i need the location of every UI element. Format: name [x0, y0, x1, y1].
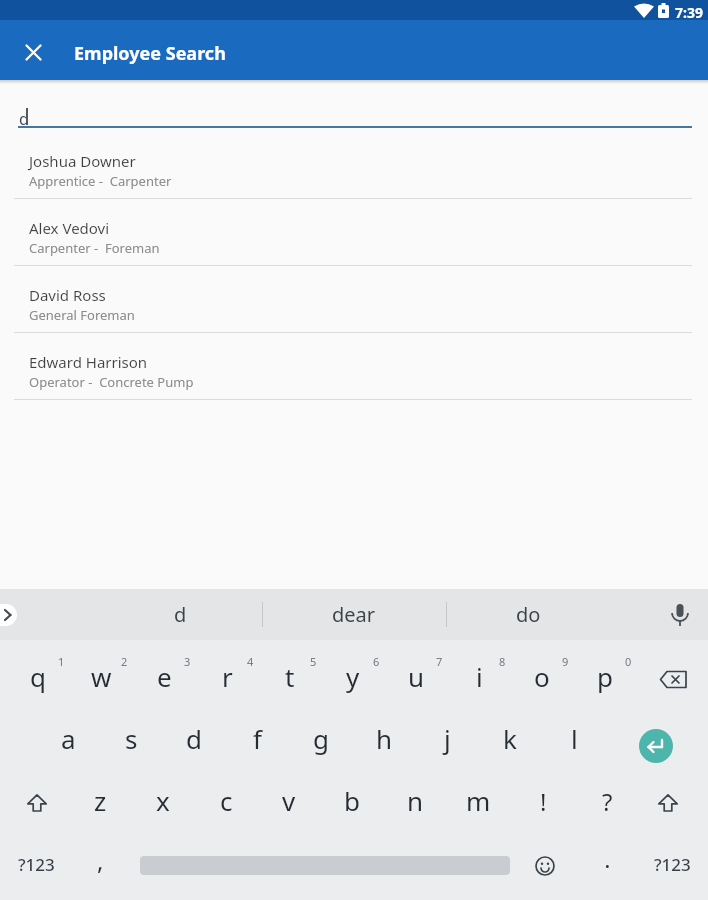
button[interactable]: s: [101, 709, 161, 767]
button[interactable]: c: [196, 771, 256, 829]
staticText: David Ross: [29, 285, 106, 305]
staticText: 6: [373, 654, 380, 669]
staticText: v: [282, 783, 296, 818]
button[interactable]: ?123: [639, 835, 705, 893]
button[interactable]: ?123: [3, 835, 69, 893]
staticText: Edward Harrison: [29, 352, 148, 372]
button[interactable]: f: [227, 709, 287, 767]
button[interactable]: n: [385, 771, 445, 829]
button[interactable]: ,: [72, 831, 128, 889]
button[interactable]: [664, 599, 696, 631]
staticText: ?: [602, 785, 613, 818]
staticText: z: [94, 783, 107, 818]
staticText: 5: [310, 654, 317, 669]
staticText: d: [19, 108, 29, 130]
staticText: q: [30, 659, 46, 694]
staticText: 2: [121, 654, 128, 669]
staticText: ?123: [18, 853, 55, 876]
button[interactable]: [639, 729, 673, 763]
button[interactable]: j: [417, 709, 477, 767]
staticText: do: [516, 601, 541, 628]
staticText: e: [157, 659, 172, 694]
staticText: Employee Search: [74, 41, 226, 66]
staticText: Apprentice - Carpenter: [29, 172, 172, 190]
button[interactable]: a: [38, 709, 98, 767]
staticText: s: [125, 721, 138, 756]
staticText: d: [174, 601, 187, 628]
staticText: ,: [97, 844, 104, 877]
staticText: 1: [58, 654, 65, 669]
staticText: d: [186, 721, 202, 756]
button[interactable]: !: [513, 772, 573, 830]
staticText: ·: [605, 855, 610, 878]
button[interactable]: dear: [284, 589, 424, 639]
button[interactable]: e: [134, 647, 194, 705]
button[interactable]: ?: [577, 772, 637, 830]
button[interactable]: o: [512, 647, 572, 705]
staticText: n: [407, 783, 424, 818]
button[interactable]: Edward Harrison: [0, 332, 708, 399]
button[interactable]: d: [110, 589, 250, 639]
staticText: b: [344, 783, 360, 818]
button[interactable]: ·: [579, 837, 635, 895]
button[interactable]: [529, 850, 561, 882]
staticText: 8: [499, 654, 506, 669]
button[interactable]: k: [480, 709, 540, 767]
button[interactable]: David Ross: [0, 265, 708, 332]
button[interactable]: z: [70, 771, 130, 829]
staticText: h: [376, 721, 393, 756]
button[interactable]: r: [197, 647, 257, 705]
staticText: p: [597, 659, 613, 694]
button[interactable]: d: [164, 709, 224, 767]
staticText: t: [285, 659, 295, 694]
staticText: !: [540, 785, 547, 818]
button[interactable]: q: [8, 647, 68, 705]
staticText: w: [91, 659, 112, 694]
button[interactable]: b: [322, 771, 382, 829]
staticText: u: [408, 659, 425, 694]
button[interactable]: [18, 37, 48, 67]
staticText: Alex Vedovi: [29, 218, 110, 238]
button[interactable]: do: [458, 589, 598, 639]
staticText: l: [571, 721, 578, 756]
button[interactable]: v: [259, 771, 319, 829]
button[interactable]: p: [575, 647, 635, 705]
button[interactable]: Alex Vedovi: [0, 198, 708, 265]
staticText: m: [466, 783, 491, 818]
staticText: y: [346, 659, 360, 694]
staticText: 9: [562, 654, 569, 669]
button[interactable]: [7, 775, 67, 831]
button[interactable]: m: [448, 771, 508, 829]
staticText: f: [253, 721, 262, 756]
button[interactable]: w: [71, 647, 131, 705]
button[interactable]: g: [291, 709, 351, 767]
staticText: Operator - Concrete Pump: [29, 373, 194, 391]
staticText: r: [222, 659, 233, 694]
staticText: c: [220, 783, 233, 818]
staticText: i: [476, 659, 483, 694]
staticText: a: [61, 721, 76, 756]
button[interactable]: [642, 650, 704, 708]
button[interactable]: l: [544, 709, 604, 767]
staticText: k: [503, 721, 517, 756]
staticText: 7: [436, 654, 443, 669]
staticText: 7:39: [675, 3, 703, 22]
staticText: x: [156, 783, 170, 818]
button[interactable]: x: [133, 771, 193, 829]
staticText: dear: [332, 601, 376, 628]
staticText: g: [313, 721, 329, 756]
staticText: 0: [625, 654, 632, 669]
staticText: 4: [247, 654, 254, 669]
button[interactable]: Joshua Downer: [0, 131, 708, 198]
button[interactable]: u: [386, 647, 446, 705]
button[interactable]: i: [449, 647, 509, 705]
button[interactable]: [638, 775, 698, 831]
staticText: 3: [184, 654, 191, 669]
button[interactable]: t: [260, 647, 320, 705]
staticText: General Foreman: [29, 306, 135, 324]
button[interactable]: [0, 604, 17, 626]
button[interactable]: h: [354, 709, 414, 767]
staticText: ?123: [654, 853, 691, 876]
button[interactable]: y: [323, 647, 383, 705]
